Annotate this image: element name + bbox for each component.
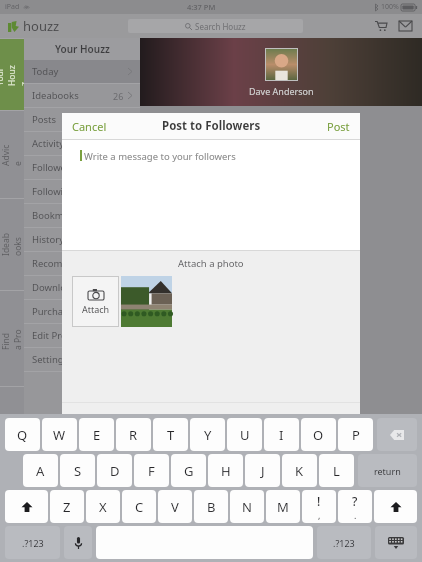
- button[interactable]: I: [264, 418, 299, 451]
- button[interactable]: Find a Pro: [0, 290, 24, 386]
- staticText: Settings: [32, 353, 69, 366]
- button[interactable]: Question: [338, 490, 372, 523]
- button[interactable]: A: [23, 454, 58, 487]
- staticText: Dave Anderson: [249, 85, 314, 97]
- button[interactable]: Downloads: [24, 276, 140, 299]
- button[interactable]: O: [301, 418, 336, 451]
- staticText: .?123: [333, 537, 355, 549]
- button[interactable]: Recommend: [24, 252, 140, 275]
- button[interactable]: Followers: [24, 156, 140, 179]
- button[interactable]: Numbers: [317, 526, 371, 559]
- staticText: 4:37 PM: [187, 2, 216, 12]
- button[interactable]: Advice: [0, 110, 24, 198]
- button[interactable]: G: [171, 454, 206, 487]
- button[interactable]: Search Houzz: [128, 19, 303, 33]
- button[interactable]: Ideabooks: [24, 84, 140, 107]
- staticText: J: [261, 462, 265, 480]
- staticText: V: [171, 498, 179, 516]
- button[interactable]: K: [282, 454, 317, 487]
- staticText: H: [221, 462, 231, 480]
- staticText: !: [317, 493, 321, 509]
- button[interactable]: Post: [317, 113, 360, 139]
- staticText: Cancel: [72, 119, 107, 134]
- button[interactable]: H: [208, 454, 243, 487]
- staticText: return: [374, 465, 401, 477]
- button[interactable]: F: [134, 454, 169, 487]
- staticText: Ideabooks: [32, 89, 79, 102]
- staticText: Edit Profile: [32, 329, 81, 342]
- staticText: Your Houzz: [0, 62, 30, 86]
- staticText: I: [279, 426, 284, 444]
- staticText: M: [277, 498, 289, 516]
- button[interactable]: Edit Profile: [24, 324, 140, 347]
- staticText: Today: [32, 65, 59, 78]
- button[interactable]: N: [230, 490, 264, 523]
- button[interactable]: Purchases: [24, 300, 140, 323]
- staticText: Followers: [32, 161, 75, 174]
- staticText: iPad: [5, 2, 20, 12]
- button[interactable]: D: [97, 454, 132, 487]
- button[interactable]: M: [266, 490, 300, 523]
- button[interactable]: Posts: [24, 108, 140, 131]
- staticText: .?123: [22, 537, 44, 549]
- staticText: 26: [113, 90, 124, 102]
- button[interactable]: B: [194, 490, 228, 523]
- staticText: Z: [63, 498, 71, 516]
- button[interactable]: Ideabooks: [0, 198, 24, 290]
- staticText: X: [99, 498, 107, 516]
- button[interactable]: S: [60, 454, 95, 487]
- button[interactable]: Y: [190, 418, 225, 451]
- staticText: O: [313, 426, 324, 444]
- button[interactable]: Q: [5, 418, 40, 451]
- button[interactable]: Return: [358, 454, 417, 487]
- staticText: Following: [32, 185, 75, 198]
- button[interactable]: U: [227, 418, 262, 451]
- button[interactable]: History: [24, 228, 140, 251]
- button[interactable]: R: [116, 418, 151, 451]
- button[interactable]: V: [158, 490, 192, 523]
- staticText: W: [53, 426, 66, 444]
- button[interactable]: L: [319, 454, 354, 487]
- button[interactable]: Messages: [396, 17, 414, 35]
- staticText: History: [32, 233, 64, 246]
- button[interactable]: Write a message to your followers: [62, 140, 360, 250]
- button[interactable]: X: [86, 490, 120, 523]
- button[interactable]: Shift: [374, 490, 417, 523]
- button[interactable]: Cancel: [62, 113, 117, 139]
- button[interactable]: Activity: [24, 132, 140, 155]
- button[interactable]: Selected photo: [121, 276, 172, 327]
- button[interactable]: P: [338, 418, 373, 451]
- staticText: F: [148, 462, 155, 480]
- button[interactable]: T: [153, 418, 188, 451]
- button[interactable]: Numbers: [5, 526, 60, 559]
- button[interactable]: Bookmarks: [24, 204, 140, 227]
- button[interactable]: Today: [24, 60, 140, 83]
- button[interactable]: Cart: [372, 17, 390, 35]
- staticText: Recommend: [32, 257, 89, 270]
- button[interactable]: Following: [24, 180, 140, 203]
- button[interactable]: C: [122, 490, 156, 523]
- staticText: Q: [17, 426, 28, 444]
- button[interactable]: J: [245, 454, 280, 487]
- staticText: …de: [146, 139, 164, 151]
- button[interactable]: Z: [50, 490, 84, 523]
- button[interactable]: Hide keyboard: [375, 526, 417, 559]
- staticText: Downloads: [32, 281, 82, 294]
- button[interactable]: Exclamation: [302, 490, 336, 523]
- staticText: R: [129, 426, 138, 444]
- staticText: E: [93, 426, 101, 444]
- button[interactable]: Backspace: [377, 418, 417, 451]
- button[interactable]: W: [42, 418, 77, 451]
- button[interactable]: Attach: [72, 276, 119, 327]
- button[interactable]: Dictation: [64, 526, 92, 559]
- button[interactable]: E: [79, 418, 114, 451]
- button[interactable]: Your Houzz: [0, 38, 24, 110]
- staticText: K: [295, 462, 304, 480]
- button[interactable]: Settings: [24, 348, 140, 371]
- staticText: ,: [318, 509, 321, 521]
- button[interactable]: Shift: [5, 490, 48, 523]
